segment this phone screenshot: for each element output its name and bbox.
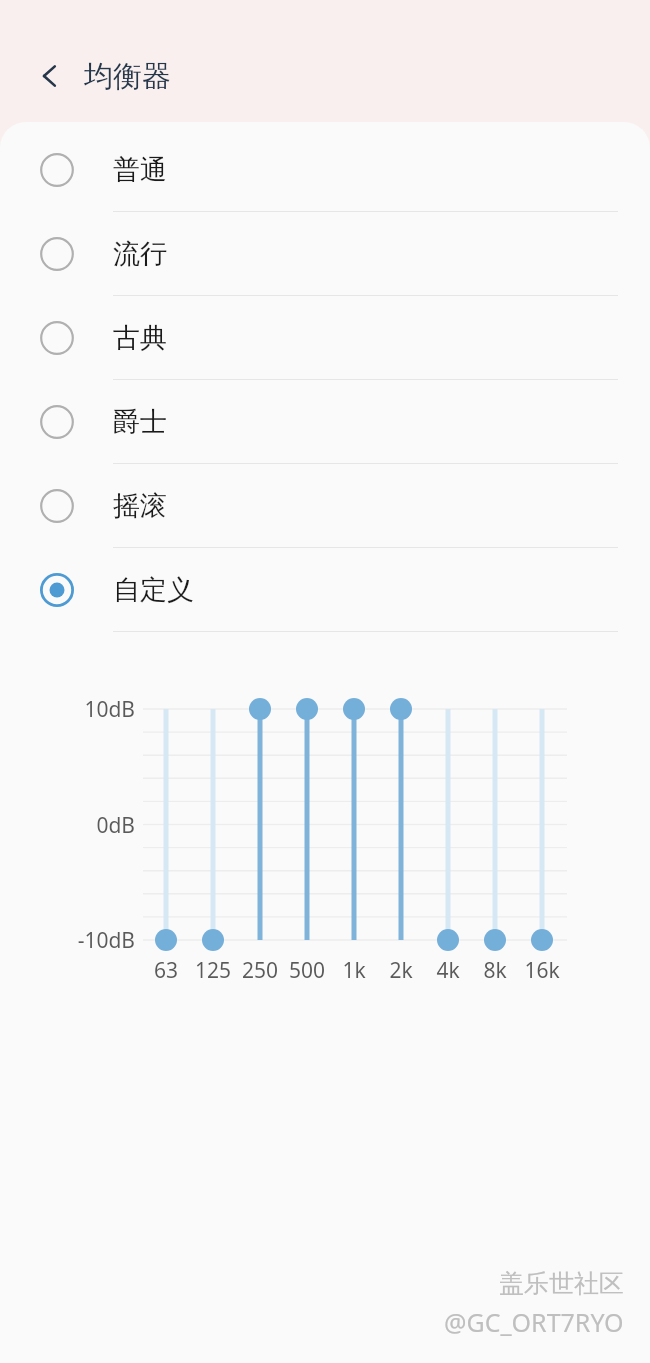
staticText: 流行: [113, 237, 167, 271]
staticText: 250: [230, 956, 290, 985]
staticText: 125: [183, 956, 243, 985]
staticText: 普通: [113, 153, 167, 187]
staticText: 自定义: [113, 573, 194, 607]
button[interactable]: 古典: [0, 296, 650, 380]
staticText: @GC_ORT7RYO: [444, 1305, 624, 1339]
staticText: 500: [277, 956, 337, 985]
button[interactable]: 摇滚: [0, 464, 650, 548]
staticText: 摇滚: [113, 489, 167, 523]
button[interactable]: Back: [22, 48, 78, 104]
staticText: -10dB: [20, 926, 135, 955]
staticText: 10dB: [20, 695, 135, 724]
staticText: 爵士: [113, 405, 167, 439]
staticText: 盖乐世社区: [499, 1268, 624, 1299]
button[interactable]: 流行: [0, 212, 650, 296]
staticText: 均衡器: [84, 58, 171, 95]
staticText: 8k: [465, 956, 525, 985]
staticText: 2k: [371, 956, 431, 985]
staticText: 63: [136, 956, 196, 985]
staticText: 4k: [418, 956, 478, 985]
staticText: 古典: [113, 321, 167, 355]
staticText: 16k: [512, 956, 572, 985]
button[interactable]: 普通: [0, 128, 650, 212]
staticText: 1k: [324, 956, 384, 985]
staticText: 0dB: [20, 811, 135, 840]
button[interactable]: 自定义: [0, 548, 650, 632]
button[interactable]: 爵士: [0, 380, 650, 464]
